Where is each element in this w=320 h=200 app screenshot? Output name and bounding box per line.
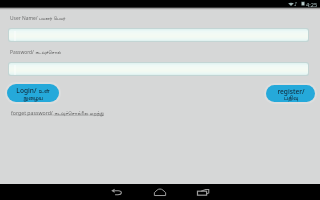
button[interactable]: Login/ உள் நுழைய	[7, 84, 59, 102]
staticText: Login/ உள் நுழைய	[16, 86, 50, 101]
button[interactable]: Back	[101, 184, 133, 200]
staticText: ♪	[294, 1, 298, 7]
button[interactable]: Recents	[187, 184, 219, 200]
button[interactable]: Home	[144, 184, 176, 200]
button[interactable]: User name input	[9, 29, 308, 41]
button[interactable]: register/ பதிவு	[266, 85, 315, 102]
button[interactable]: Password input	[9, 63, 308, 75]
staticText: register/ பதிவு	[277, 87, 305, 101]
staticText: 4:25	[306, 1, 318, 8]
staticText: Password/ கடவுச்சொல்	[10, 49, 61, 56]
button[interactable]: forget password/ கடவுச்சொல்லை மறந்து	[11, 109, 104, 116]
staticText: User Name/ பயனர் பெயர்	[10, 15, 66, 22]
